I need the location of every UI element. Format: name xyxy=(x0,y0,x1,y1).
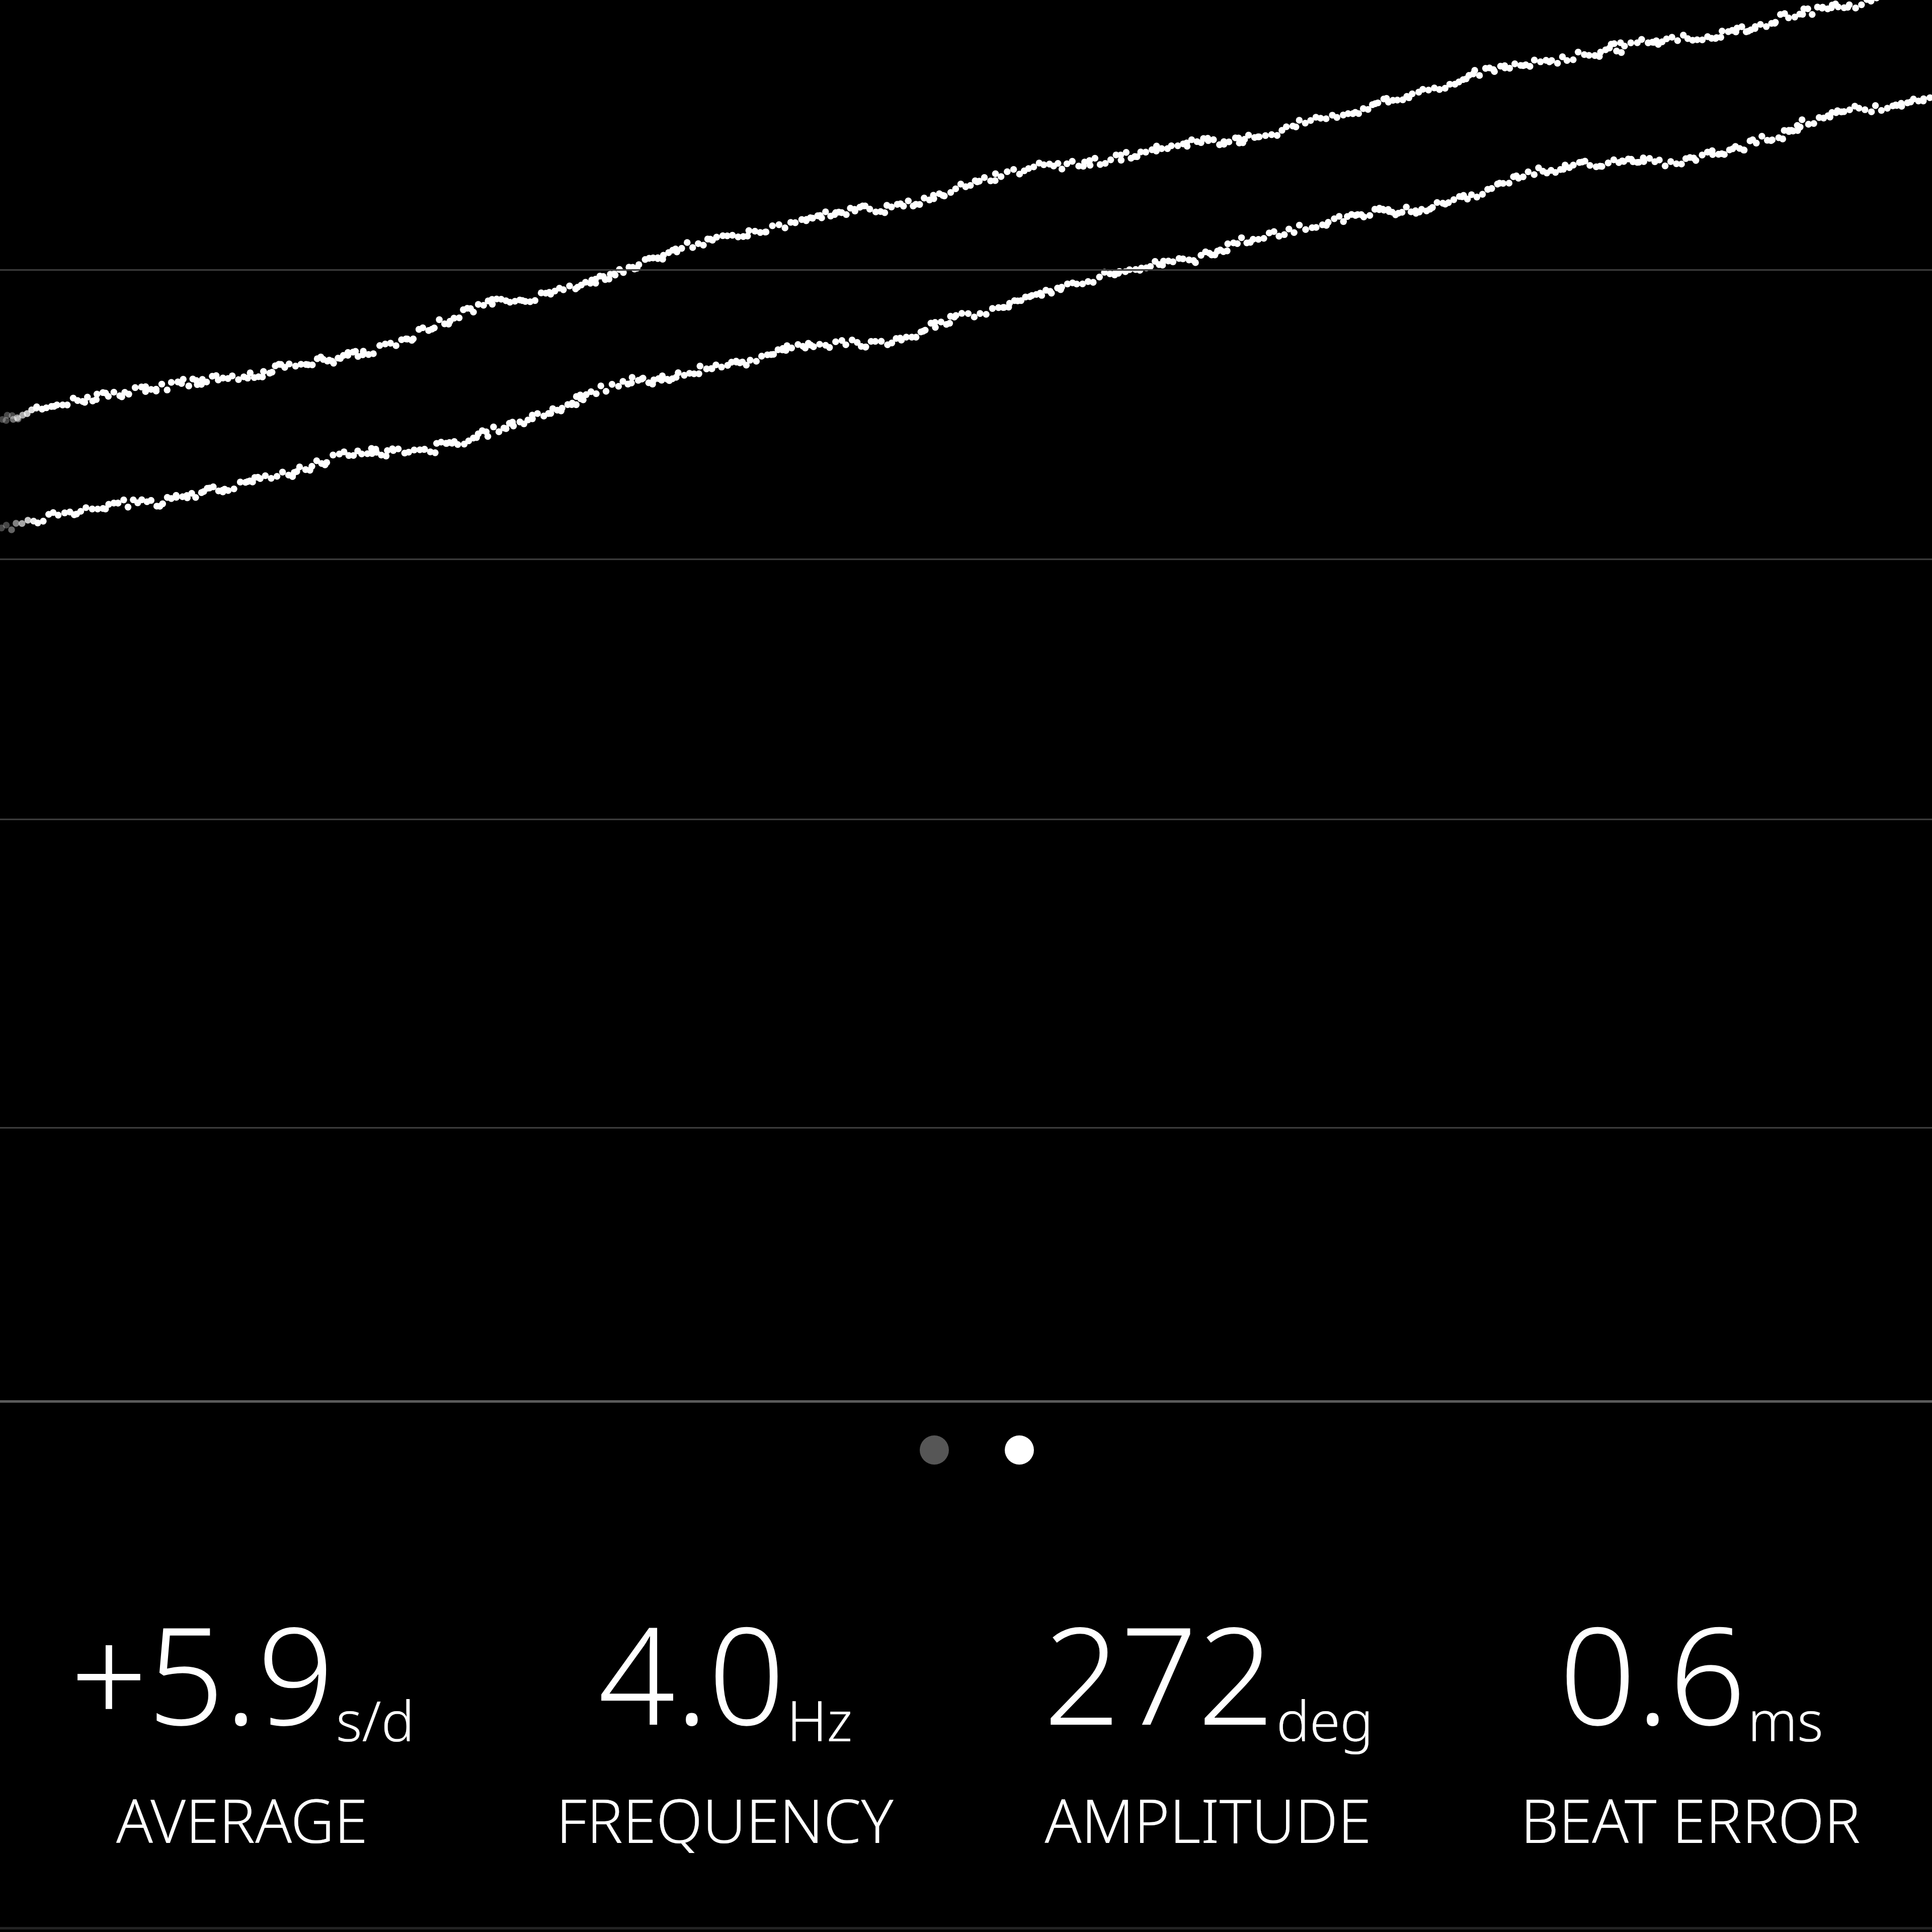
staticText: BEAT ERROR xyxy=(1520,1779,1861,1861)
button[interactable]: 4.0 xyxy=(483,1459,966,1932)
staticText: AMPLITUDE xyxy=(1044,1779,1372,1861)
button[interactable]: +5.9 xyxy=(0,1459,483,1932)
staticText: 4.0 xyxy=(598,1581,785,1764)
staticText: Hz xyxy=(787,1682,853,1757)
staticText: 0.6 xyxy=(1559,1581,1746,1764)
staticText: 272 xyxy=(1043,1581,1275,1764)
staticText: +5.9 xyxy=(70,1581,335,1764)
button[interactable]: 0.6 xyxy=(1449,1459,1932,1932)
staticText: AVERAGE xyxy=(116,1779,368,1861)
button[interactable]: Page 2 xyxy=(983,1414,1056,1486)
staticText: FREQUENCY xyxy=(556,1779,894,1861)
staticText: ms xyxy=(1748,1682,1823,1757)
button[interactable]: 272 xyxy=(966,1459,1449,1932)
staticText: s/d xyxy=(336,1682,415,1757)
staticText: deg xyxy=(1276,1682,1374,1757)
button[interactable]: Page 1 xyxy=(898,1414,971,1486)
